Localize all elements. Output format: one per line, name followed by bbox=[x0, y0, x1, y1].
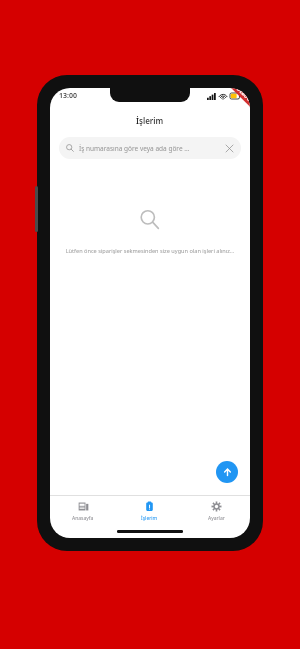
staticText: 13:00 bbox=[59, 91, 77, 101]
staticText: İşlerim bbox=[136, 115, 164, 126]
button[interactable]: Anasayfa bbox=[50, 496, 116, 526]
staticText: İş numarasına göre veya ada göre ... bbox=[79, 144, 220, 153]
button[interactable]: İş numarasına göre veya ada göre ... bbox=[59, 137, 241, 159]
staticText: Lütfen önce siparişler sekmesinden size … bbox=[53, 247, 247, 255]
staticText: Anasayfa bbox=[72, 515, 94, 522]
button[interactable]: Clear search bbox=[224, 143, 234, 153]
button[interactable]: Ayarlar bbox=[183, 496, 250, 526]
staticText: İşlerim bbox=[141, 515, 158, 522]
button[interactable]: İşlerim bbox=[116, 496, 183, 526]
staticText: Ayarlar bbox=[208, 515, 225, 522]
staticText: DEBUG bbox=[235, 88, 250, 103]
button[interactable]: Scroll to top bbox=[216, 461, 238, 483]
